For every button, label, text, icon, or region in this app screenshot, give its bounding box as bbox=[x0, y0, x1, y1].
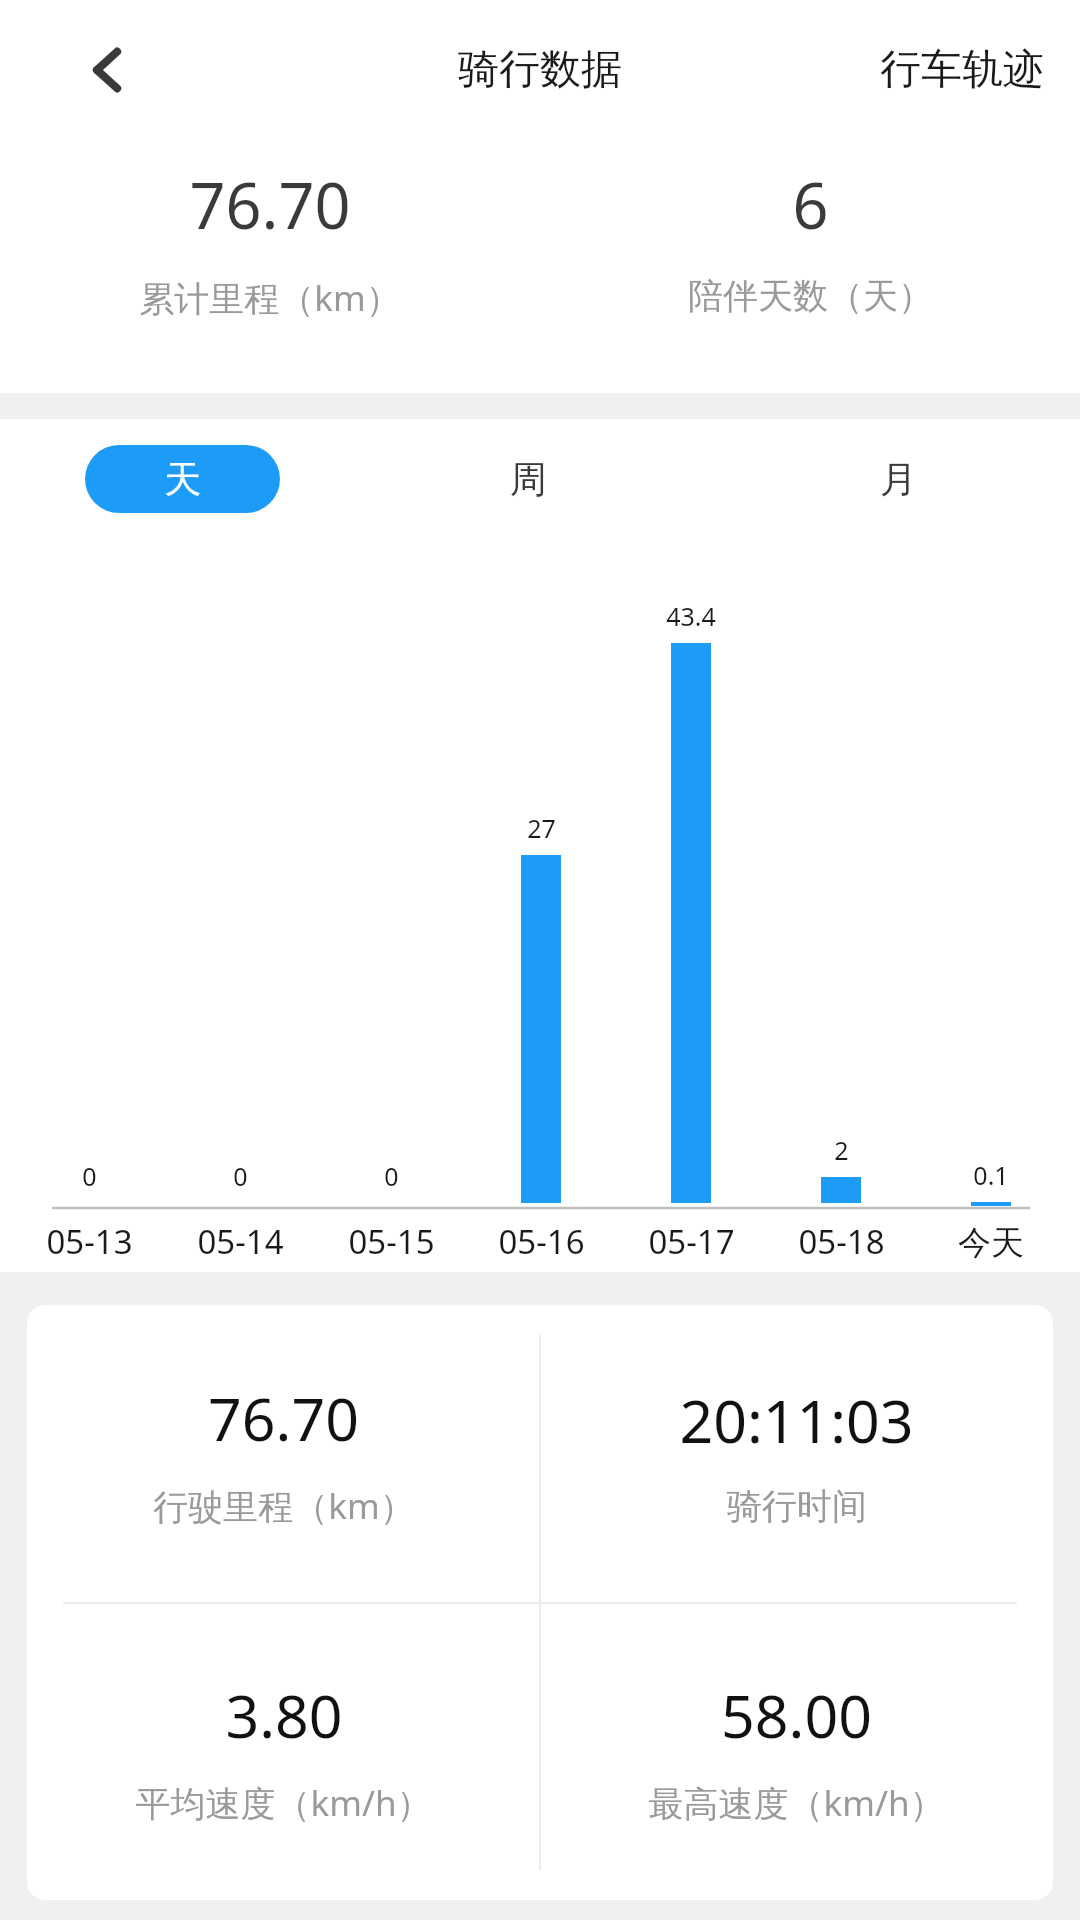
staticText: 3.80 bbox=[225, 1675, 343, 1755]
staticText: 骑行数据 bbox=[458, 44, 622, 96]
button[interactable]: 3.80 bbox=[27, 1602, 540, 1900]
button[interactable]: 月 bbox=[848, 445, 948, 513]
staticText: 2 bbox=[834, 1133, 849, 1167]
staticText: 27 bbox=[527, 811, 556, 845]
button[interactable]: 58.00 bbox=[540, 1602, 1053, 1900]
button[interactable]: 天 bbox=[85, 445, 280, 513]
staticText: 76.70 bbox=[189, 162, 351, 248]
staticText: 平均速度（km/h） bbox=[135, 1779, 432, 1827]
staticText: 43.4 bbox=[666, 599, 716, 633]
staticText: 6 bbox=[792, 162, 829, 248]
staticText: 0.1 bbox=[973, 1158, 1009, 1192]
staticText: 月 bbox=[880, 456, 917, 503]
staticText: 天 bbox=[164, 456, 201, 503]
staticText: 0 bbox=[233, 1159, 248, 1193]
button[interactable]: 20:11:03 bbox=[540, 1305, 1053, 1602]
staticText: 05-15 bbox=[348, 1219, 435, 1264]
staticText: 05-16 bbox=[498, 1219, 585, 1264]
staticText: 76.70 bbox=[208, 1378, 359, 1458]
staticText: 05-13 bbox=[46, 1219, 133, 1264]
button[interactable]: 周 bbox=[478, 445, 578, 513]
staticText: 最高速度（km/h） bbox=[648, 1779, 945, 1827]
staticText: 0 bbox=[82, 1159, 97, 1193]
button[interactable]: 76.70 bbox=[27, 1305, 540, 1602]
staticText: 周 bbox=[510, 456, 547, 503]
staticText: 58.00 bbox=[721, 1675, 872, 1755]
staticText: 骑行时间 bbox=[727, 1484, 867, 1528]
staticText: 行车轨迹 bbox=[880, 44, 1044, 96]
staticText: 05-18 bbox=[798, 1219, 885, 1264]
button[interactable]: Back bbox=[58, 20, 158, 120]
staticText: 行驶里程（km） bbox=[153, 1482, 415, 1530]
button[interactable]: 行车轨迹 bbox=[872, 32, 1052, 108]
staticText: 今天 bbox=[958, 1222, 1024, 1264]
staticText: 累计里程（km） bbox=[139, 274, 401, 322]
staticText: 05-14 bbox=[197, 1219, 284, 1264]
staticText: 0 bbox=[384, 1159, 399, 1193]
staticText: 20:11:03 bbox=[679, 1380, 914, 1460]
staticText: 陪伴天数（天） bbox=[688, 274, 933, 318]
staticText: 05-17 bbox=[648, 1219, 735, 1264]
